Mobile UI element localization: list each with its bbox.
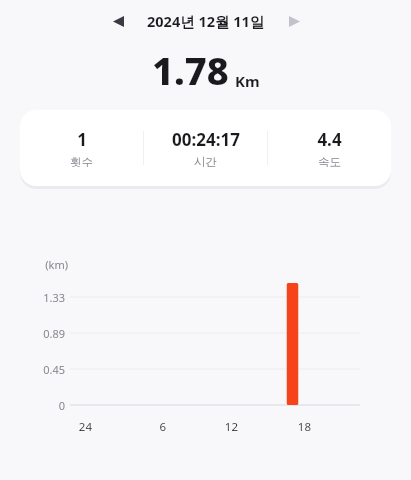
- staticText: 2024년 12월 11일: [147, 11, 265, 31]
- staticText: 0.89: [43, 326, 65, 341]
- staticText: 4.4: [317, 128, 342, 151]
- staticText: 00:24:17: [172, 128, 240, 151]
- staticText: 0.45: [43, 362, 65, 377]
- staticText: 1.33: [43, 290, 65, 305]
- staticText: 시간: [194, 155, 217, 169]
- staticText: 0: [58, 398, 65, 413]
- staticText: 24: [78, 419, 92, 435]
- staticText: 1.78: [152, 44, 229, 96]
- staticText: 1: [77, 128, 87, 151]
- button[interactable]: Previous day: [103, 6, 133, 36]
- staticText: Km: [235, 71, 260, 91]
- staticText: 속도: [318, 155, 341, 169]
- staticText: (km): [45, 257, 68, 272]
- button[interactable]: Next day: [279, 6, 309, 36]
- staticText: 6: [159, 419, 166, 435]
- staticText: 횟수: [70, 155, 93, 169]
- button[interactable]: 1: [20, 110, 391, 186]
- staticText: 12: [224, 419, 238, 435]
- staticText: 18: [297, 419, 311, 435]
